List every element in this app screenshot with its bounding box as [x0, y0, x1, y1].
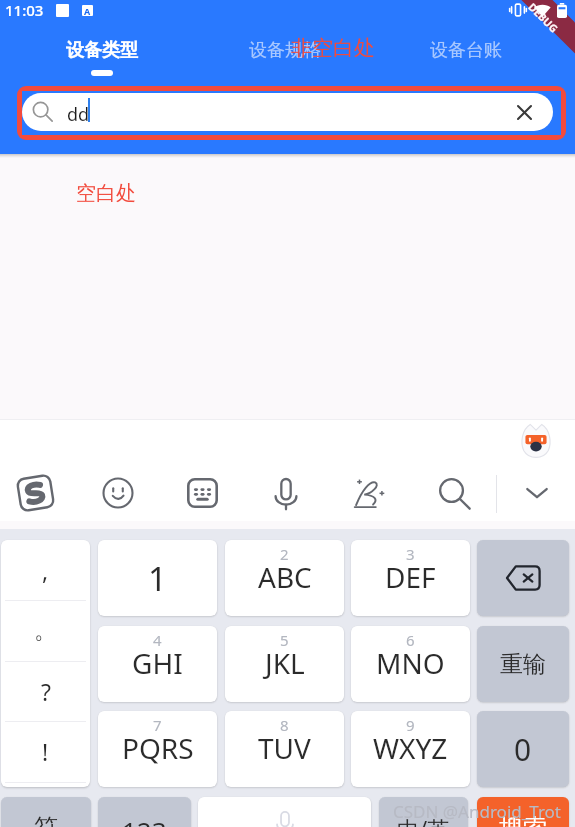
staticText: 符: [34, 813, 58, 827]
staticText: ,: [42, 555, 49, 586]
staticText: 6: [406, 630, 415, 650]
staticText: GHI: [132, 644, 183, 682]
staticText: MNO: [376, 644, 445, 682]
button[interactable]: 设备台账: [376, 24, 556, 84]
button[interactable]: [198, 797, 371, 827]
button[interactable]: 设备类型: [12, 24, 192, 84]
staticText: 9: [406, 715, 415, 735]
staticText: 非空白处: [291, 35, 375, 61]
staticText: 2: [280, 544, 289, 564]
staticText: A: [84, 5, 91, 16]
staticText: 设备台账: [430, 39, 502, 62]
button[interactable]: 4: [98, 626, 217, 702]
button[interactable]: 9: [351, 711, 470, 787]
button[interactable]: ,: [1, 540, 90, 600]
button[interactable]: 0: [477, 711, 569, 787]
staticText: DEBUG: [525, 0, 562, 36]
staticText: 4: [153, 630, 162, 650]
staticText: JKL: [265, 644, 305, 682]
staticText: ABC: [258, 558, 312, 596]
button[interactable]: 6: [351, 626, 470, 702]
staticText: 1: [148, 556, 167, 601]
staticText: 123: [122, 813, 167, 827]
button[interactable]: 。: [1, 600, 90, 660]
button[interactable]: 1: [98, 540, 217, 616]
staticText: CSDN @Android_Trot: [393, 800, 561, 823]
staticText: 。: [34, 616, 57, 645]
button[interactable]: 设备规格: [195, 24, 375, 84]
staticText: !: [42, 736, 49, 767]
button[interactable]: Sogou input: [13, 471, 57, 515]
staticText: 5: [280, 630, 289, 650]
staticText: 7: [153, 715, 162, 735]
button[interactable]: dd: [22, 93, 553, 131]
button[interactable]: 3: [351, 540, 470, 616]
button[interactable]: 重输: [477, 626, 569, 702]
button[interactable]: Search: [432, 471, 476, 515]
button[interactable]: 符: [1, 797, 91, 827]
button[interactable]: 5: [225, 626, 344, 702]
button[interactable]: Emoji: [96, 471, 140, 515]
staticText: 0: [514, 729, 532, 770]
staticText: 11:03: [5, 0, 44, 20]
button[interactable]: Backspace: [477, 540, 569, 616]
button[interactable]: 搜索: [477, 797, 569, 827]
button[interactable]: 123: [98, 797, 191, 827]
staticText: ?: [41, 676, 51, 707]
button[interactable]: !: [1, 721, 90, 781]
button[interactable]: 8: [225, 711, 344, 787]
staticText: 重输: [500, 650, 546, 679]
staticText: dd: [67, 102, 90, 127]
button[interactable]: Assistant: [520, 423, 552, 459]
button[interactable]: 2: [225, 540, 344, 616]
staticText: TUV: [258, 729, 311, 767]
button[interactable]: Keyboard layout: [180, 471, 224, 515]
staticText: 设备类型: [66, 39, 138, 62]
staticText: 3: [406, 544, 415, 564]
staticText: 8: [280, 715, 289, 735]
button[interactable]: Handwriting: [347, 471, 391, 515]
button[interactable]: 中/英: [379, 797, 468, 827]
staticText: 空白处: [76, 181, 136, 206]
button[interactable]: Clear text: [512, 100, 536, 124]
staticText: 中/英: [397, 813, 450, 827]
button[interactable]: Hide keyboard: [515, 471, 559, 515]
button[interactable]: ?: [1, 661, 90, 721]
button[interactable]: Voice input: [264, 471, 308, 515]
staticText: 搜索: [499, 813, 547, 827]
staticText: PQRS: [122, 729, 194, 767]
button[interactable]: 7: [98, 711, 217, 787]
staticText: WXYZ: [373, 729, 448, 767]
staticText: DEF: [385, 558, 436, 596]
staticText: 设备规格: [249, 39, 321, 62]
